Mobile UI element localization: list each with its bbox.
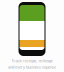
staticText: Track receipts, mileage <box>11 58 52 63</box>
staticText: and every business expense <box>8 64 56 70</box>
